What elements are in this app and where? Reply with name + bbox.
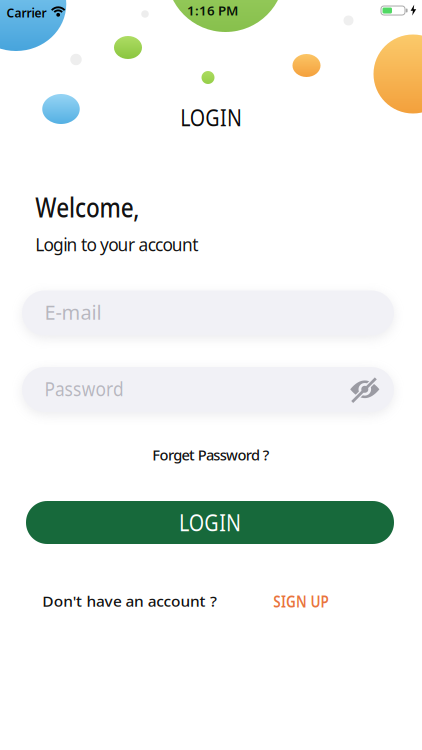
staticText: SIGN UP xyxy=(273,591,339,612)
staticText: E-mail xyxy=(44,299,101,325)
button[interactable]: Forget Password ? xyxy=(152,445,270,464)
staticText: Don't have an account ? xyxy=(42,591,208,611)
staticText: Carrier xyxy=(6,5,46,21)
staticText: Password xyxy=(44,375,135,402)
button[interactable]: Password xyxy=(22,367,394,412)
button[interactable]: Show password xyxy=(347,371,383,407)
staticText: LOGIN xyxy=(174,507,245,537)
staticText: LOGIN xyxy=(175,102,246,132)
staticText: Login to your account xyxy=(35,233,198,256)
button[interactable]: SIGN UP xyxy=(273,591,339,612)
staticText: Welcome, xyxy=(35,189,158,225)
button[interactable]: LOGIN xyxy=(26,501,394,544)
staticText: 1:16 PM xyxy=(187,1,238,19)
button[interactable]: E-mail xyxy=(22,290,394,335)
staticText: Forget Password ? xyxy=(152,445,270,464)
